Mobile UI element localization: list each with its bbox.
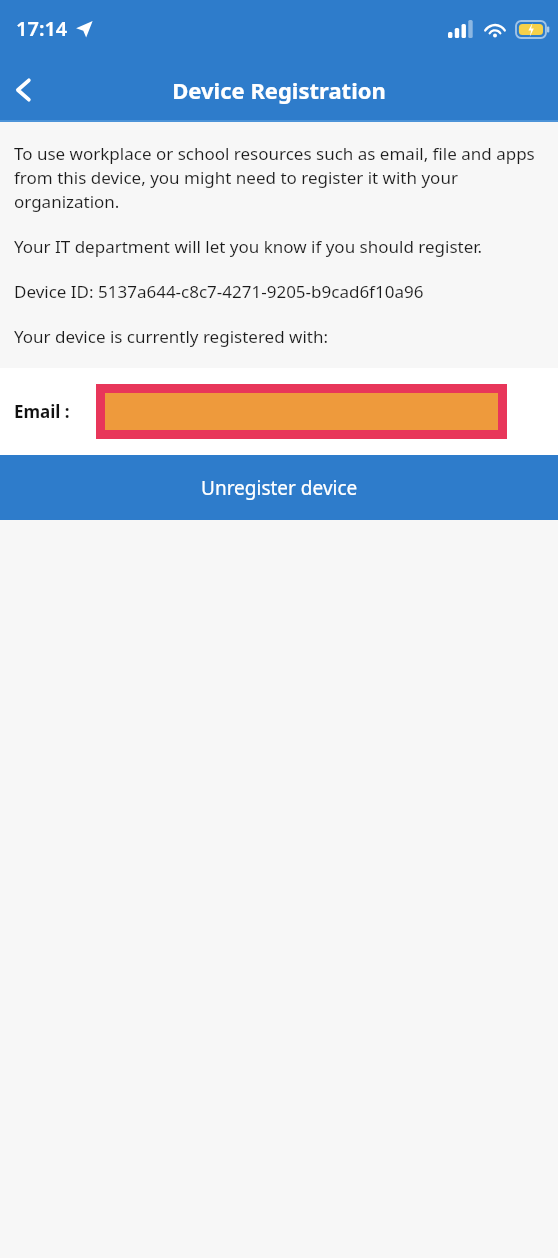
staticText: Device ID: 5137a644-c8c7-4271-9205-b9cad… [14, 280, 424, 303]
staticText: Device Registration [172, 75, 386, 105]
staticText: Your device is currently registered with… [14, 325, 328, 348]
staticText: Your IT department will let you know if … [14, 235, 483, 258]
staticText: 17:14 [16, 15, 68, 42]
button[interactable]: Back [0, 66, 48, 114]
staticText: Unregister device [201, 475, 358, 501]
button[interactable]: Unregister device [0, 455, 558, 520]
staticText: Email : [14, 400, 70, 423]
staticText: To use workplace or school resources suc… [14, 142, 544, 213]
